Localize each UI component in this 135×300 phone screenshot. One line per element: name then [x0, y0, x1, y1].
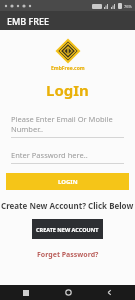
staticText: 76%	[124, 4, 132, 9]
button[interactable]: Please Enter Email Or Mobile Number..	[11, 114, 124, 138]
staticText: Enter Password here..	[11, 150, 88, 160]
button[interactable]: Home	[53, 285, 83, 300]
staticText: EmbFree.com	[51, 65, 85, 72]
staticText: Please Enter Email Or Mobile Number..	[11, 114, 124, 134]
staticText: Create New Account? Click Below	[1, 200, 134, 211]
button[interactable]: CREATE NEW ACCOUNT	[32, 219, 103, 239]
staticText: EMB FREE	[7, 15, 49, 27]
button[interactable]: Back	[94, 285, 124, 300]
staticText: LOGIN	[58, 178, 78, 186]
button[interactable]: Recent apps	[11, 285, 41, 300]
staticText: LogIn	[46, 80, 89, 100]
button[interactable]: Forget Password?	[33, 248, 103, 262]
button[interactable]: LOGIN	[6, 173, 129, 190]
staticText: CREATE NEW ACCOUNT	[36, 226, 99, 233]
button[interactable]: Enter Password here..	[11, 150, 124, 164]
